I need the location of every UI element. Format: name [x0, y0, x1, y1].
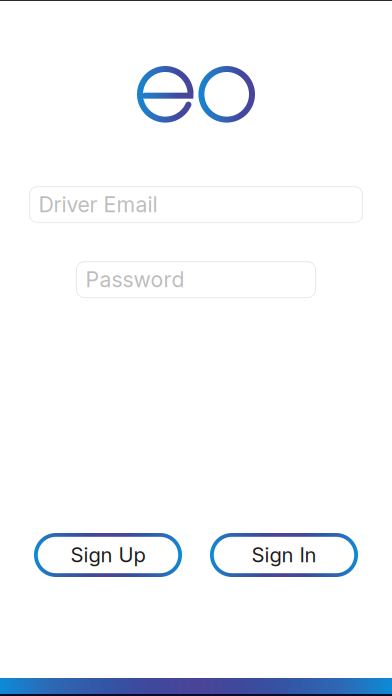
button[interactable]: Sign Up — [34, 533, 182, 577]
button[interactable]: Password — [76, 262, 315, 298]
button[interactable]: Sign In — [210, 533, 358, 577]
staticText: Sign Up — [70, 543, 145, 567]
button[interactable]: Driver Email — [29, 187, 362, 223]
staticText: Sign In — [251, 543, 316, 567]
staticText: Driver Email — [38, 192, 157, 217]
staticText: Password — [85, 267, 184, 292]
